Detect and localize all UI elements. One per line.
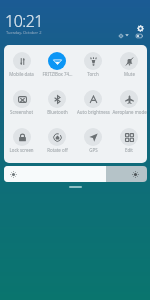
staticText: Screenshot bbox=[10, 109, 33, 115]
button[interactable]: Mute bbox=[111, 52, 147, 77]
staticText: 10:21 bbox=[5, 10, 43, 32]
button[interactable]: Torch bbox=[75, 52, 111, 77]
staticText: Mobile data bbox=[9, 71, 34, 77]
staticText: Tuesday, October 2 bbox=[6, 30, 42, 36]
button[interactable]: Bluetooth bbox=[39, 90, 75, 115]
staticText: GPS bbox=[89, 147, 98, 153]
button[interactable]: Screenshot bbox=[4, 90, 39, 115]
button[interactable]: Auto brightness bbox=[75, 90, 111, 115]
staticText: Torch bbox=[87, 71, 99, 77]
button[interactable]: FRITZ!Box 74… bbox=[39, 52, 75, 77]
staticText: Edit bbox=[125, 147, 133, 153]
staticText: Rotate off bbox=[47, 147, 68, 153]
staticText: Aeroplane mode bbox=[112, 109, 147, 115]
button[interactable]: Edit bbox=[111, 128, 147, 153]
button[interactable]: Brightness bbox=[4, 166, 147, 182]
button[interactable]: Settings bbox=[137, 25, 144, 32]
button[interactable]: Aeroplane mode bbox=[111, 90, 147, 115]
staticText: Auto brightness bbox=[77, 109, 110, 115]
button[interactable]: GPS bbox=[75, 128, 111, 153]
button[interactable]: Rotate off bbox=[39, 128, 75, 153]
button[interactable]: Lock screen bbox=[4, 128, 39, 153]
button[interactable]: Mobile data bbox=[4, 52, 39, 77]
staticText: Lock screen bbox=[9, 147, 34, 153]
staticText: FRITZ!Box 74… bbox=[42, 71, 73, 77]
staticText: Bluetooth bbox=[47, 109, 68, 115]
staticText: Mute bbox=[124, 71, 135, 77]
